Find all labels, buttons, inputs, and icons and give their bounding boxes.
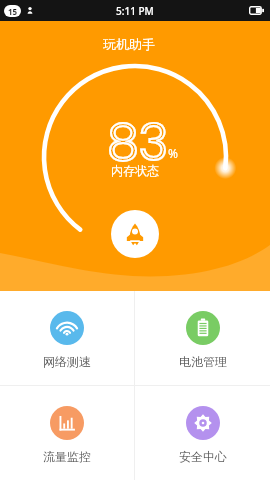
staticText: 网络测速 [43, 354, 91, 369]
button[interactable]: 网络测速 [0, 291, 134, 385]
staticText: 内存状态 [111, 163, 159, 178]
button[interactable]: 安全中心 [135, 386, 270, 480]
staticText: 流量监控 [43, 449, 91, 464]
button[interactable]: Boost memory [111, 210, 159, 258]
staticText: % [168, 145, 178, 161]
button[interactable]: 流量监控 [0, 386, 134, 480]
staticText: 安全中心 [179, 449, 227, 464]
button[interactable]: 电池管理 [135, 291, 270, 385]
staticText: 玩机助手 [103, 36, 155, 52]
staticText: 5:11 PM [116, 4, 154, 18]
staticText: 电池管理 [179, 354, 227, 369]
staticText: 15 [8, 6, 18, 17]
